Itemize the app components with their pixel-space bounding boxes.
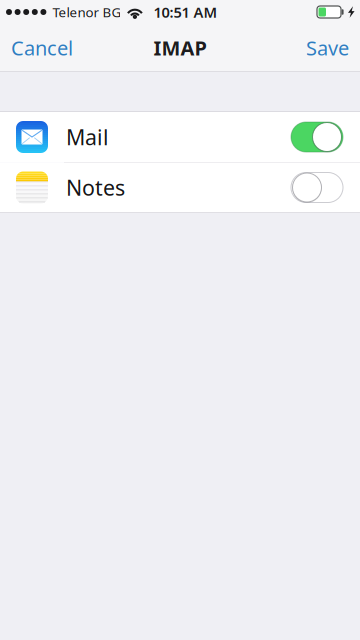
staticText: Notes	[66, 173, 125, 202]
button[interactable]: Cancel	[0, 26, 81, 70]
button[interactable]: Save	[298, 26, 360, 70]
staticText: Telenor BG	[52, 3, 121, 21]
button[interactable]: Notes	[0, 162, 360, 212]
button[interactable]: Mail	[0, 112, 360, 162]
staticText: Cancel	[11, 34, 73, 61]
staticText: Mail	[66, 123, 109, 151]
staticText: Save	[306, 34, 349, 61]
staticText: 10:51 AM	[153, 2, 217, 22]
staticText: IMAP	[153, 34, 206, 61]
